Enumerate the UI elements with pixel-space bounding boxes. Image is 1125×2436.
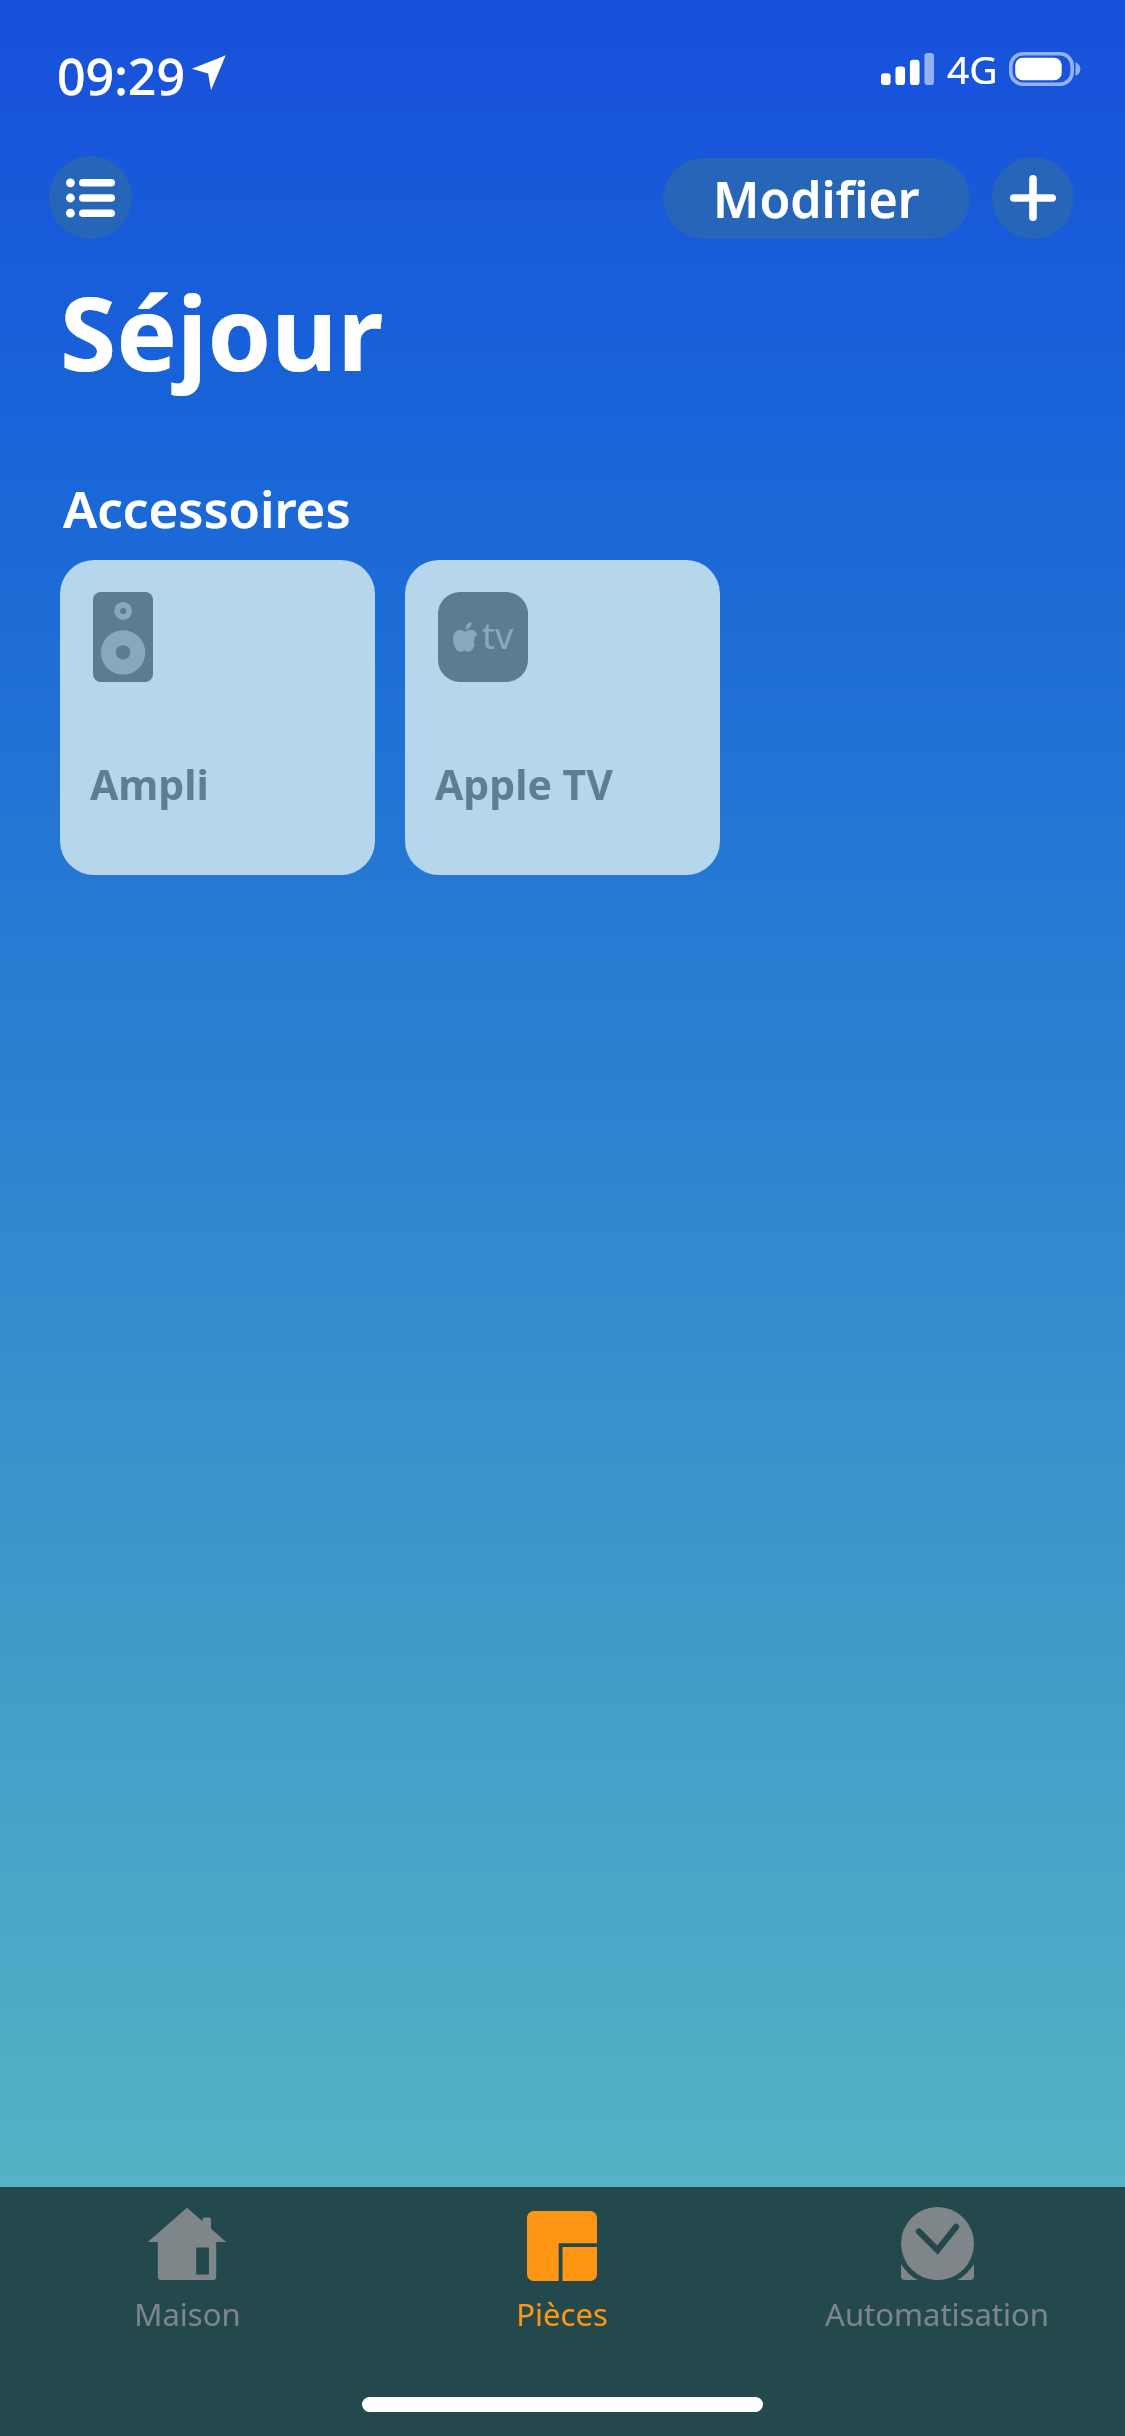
staticText: tv	[482, 611, 514, 660]
staticText: Séjour	[60, 262, 384, 401]
button[interactable]: tv	[405, 560, 720, 875]
button[interactable]: Automatisation	[767, 2193, 1107, 2335]
staticText: Maison	[134, 2293, 241, 2335]
staticText: Pièces	[516, 2293, 608, 2335]
staticText: Apple TV	[435, 756, 613, 812]
staticText: 4G	[947, 42, 998, 95]
button[interactable]: Afficher la liste	[49, 156, 132, 239]
button[interactable]: Modifier	[663, 158, 970, 239]
button[interactable]: Maison	[17, 2193, 357, 2335]
staticText: Automatisation	[825, 2293, 1049, 2335]
staticText: Ampli	[90, 756, 209, 812]
staticText: Accessoires	[63, 473, 351, 542]
button[interactable]: Pièces	[392, 2193, 732, 2335]
staticText: Modifier	[713, 165, 920, 233]
button[interactable]: Ajouter un accessoire	[992, 157, 1074, 239]
button[interactable]: Ampli	[60, 560, 375, 875]
staticText: 09:29	[57, 42, 185, 110]
